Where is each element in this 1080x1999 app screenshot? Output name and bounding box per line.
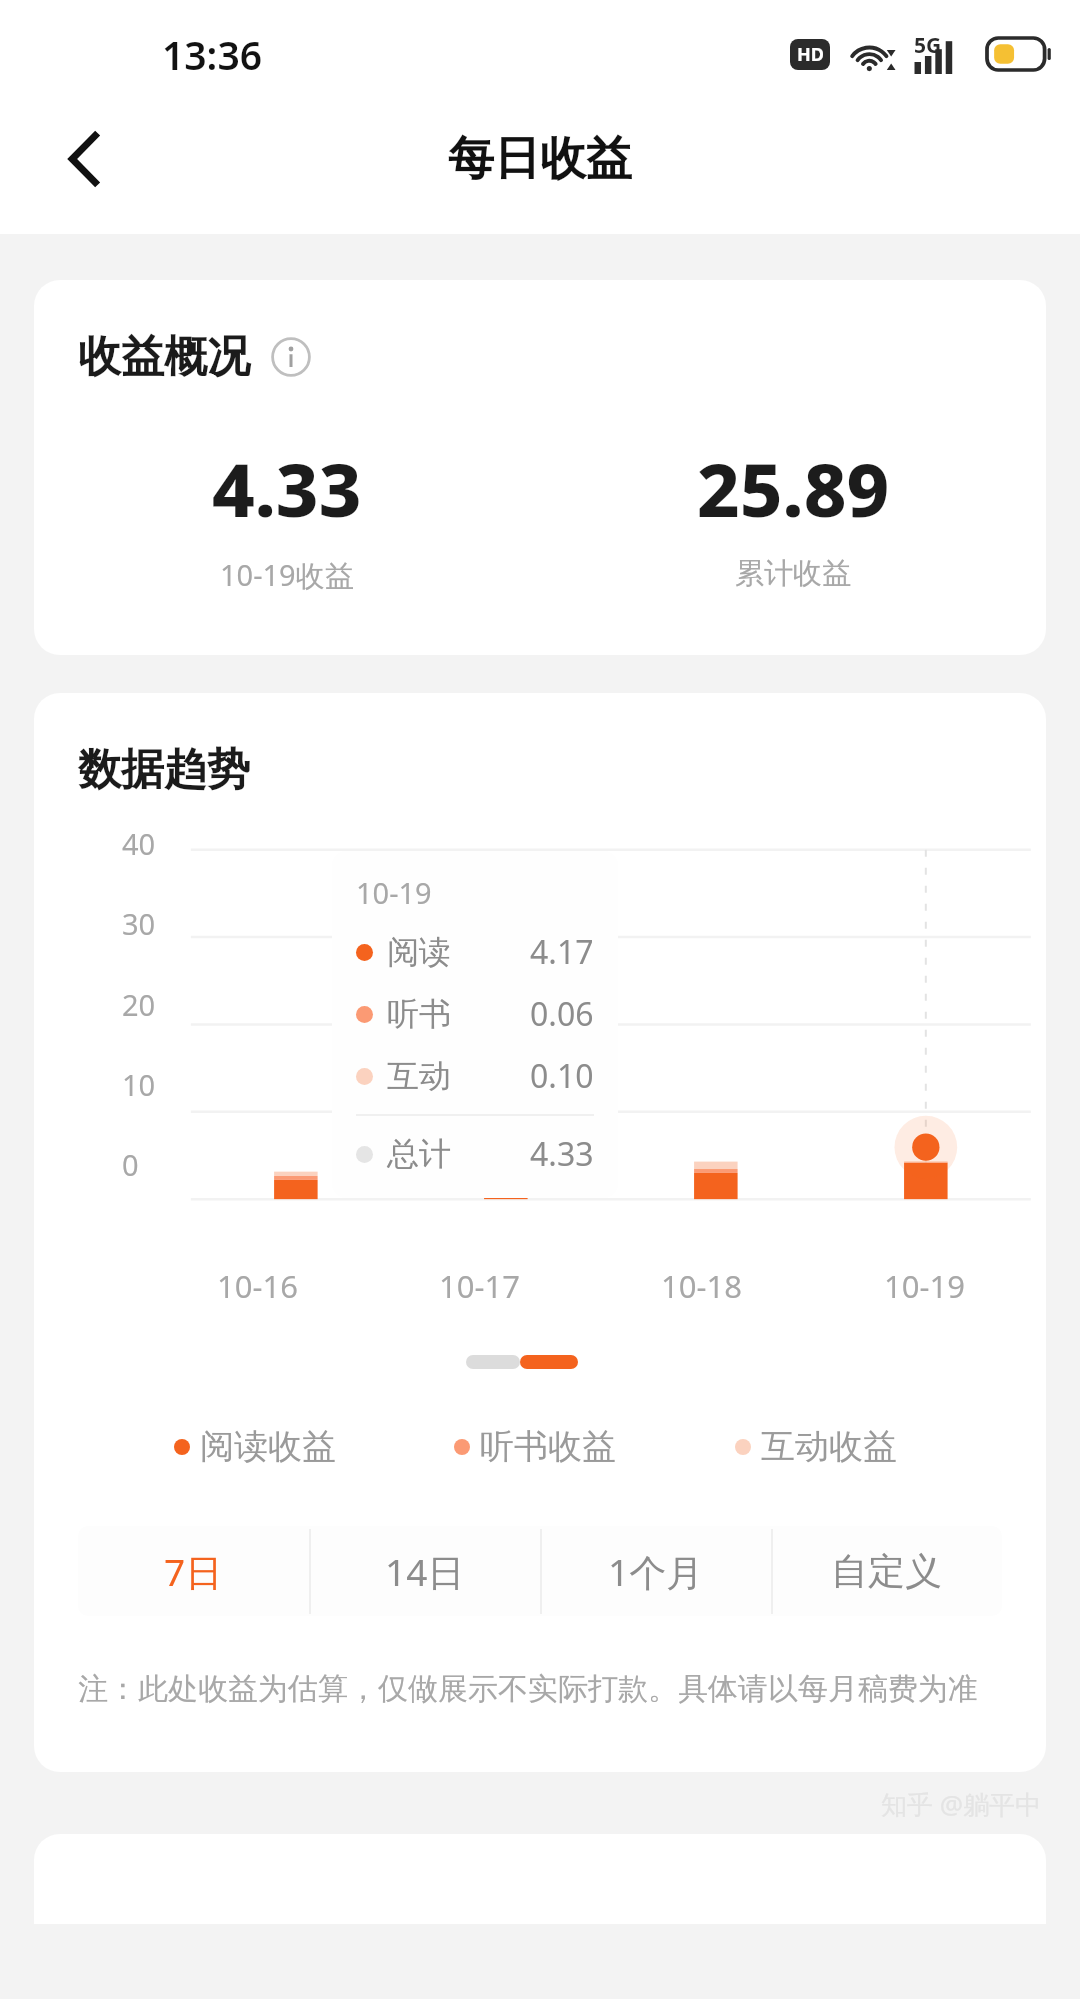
staticText: 7日 bbox=[164, 1546, 223, 1597]
staticText: 10-19 bbox=[356, 873, 432, 912]
button[interactable]: 7日 bbox=[78, 1526, 309, 1616]
staticText: 30 bbox=[122, 904, 156, 943]
staticText: 10-19收益 bbox=[220, 555, 354, 595]
staticText: 0 bbox=[122, 1145, 139, 1184]
staticText: 阅读 bbox=[387, 932, 451, 972]
button[interactable]: 自定义 bbox=[771, 1526, 1002, 1616]
staticText: 4.17 bbox=[530, 930, 594, 974]
staticText: 5G bbox=[914, 31, 942, 60]
button[interactable]: 1个月 bbox=[540, 1526, 771, 1616]
staticText: 每日收益 bbox=[448, 130, 632, 188]
staticText: 自定义 bbox=[831, 1548, 942, 1595]
staticText: 互动收益 bbox=[761, 1425, 897, 1468]
button[interactable]: 听书收益 bbox=[454, 1425, 735, 1468]
staticText: 注：此处收益为估算，仅做展示不实际打款。具体请以每月稿费为准 bbox=[78, 1670, 978, 1708]
staticText: 数据趋势 bbox=[78, 743, 250, 797]
staticText: 10-19 bbox=[884, 1265, 965, 1307]
staticText: 20 bbox=[122, 985, 156, 1024]
staticText: 13:36 bbox=[162, 28, 262, 81]
staticText: 14日 bbox=[385, 1546, 465, 1597]
staticText: 40 bbox=[122, 824, 156, 863]
staticText: 知乎 @躺平中 bbox=[881, 1786, 1042, 1822]
staticText: 10-18 bbox=[661, 1265, 742, 1307]
button[interactable]: 14日 bbox=[309, 1526, 540, 1616]
button[interactable]: Back bbox=[46, 121, 122, 197]
staticText: 0.06 bbox=[530, 992, 594, 1036]
button[interactable]: 阅读收益 bbox=[174, 1425, 454, 1468]
staticText: 25.89 bbox=[697, 438, 890, 539]
button[interactable]: 收益概况 bbox=[34, 280, 1046, 655]
staticText: 阅读收益 bbox=[200, 1425, 336, 1468]
button[interactable]: Info bbox=[268, 334, 314, 380]
staticText: 4.33 bbox=[530, 1132, 594, 1176]
staticText: 听书 bbox=[387, 994, 451, 1034]
staticText: 总计 bbox=[387, 1134, 451, 1174]
staticText: 0.10 bbox=[530, 1054, 594, 1098]
staticText: 4.33 bbox=[212, 438, 362, 539]
staticText: 10 bbox=[122, 1065, 156, 1104]
staticText: 听书收益 bbox=[480, 1425, 616, 1468]
staticText: 10-17 bbox=[439, 1265, 520, 1307]
staticText: 累计收益 bbox=[735, 555, 851, 592]
staticText: 10-16 bbox=[217, 1265, 298, 1307]
staticText: 1个月 bbox=[608, 1546, 704, 1597]
staticText: 互动 bbox=[387, 1056, 451, 1096]
button[interactable]: 互动收益 bbox=[735, 1425, 1016, 1468]
staticText: HD bbox=[797, 42, 824, 67]
staticText: 收益概况 bbox=[78, 330, 250, 384]
